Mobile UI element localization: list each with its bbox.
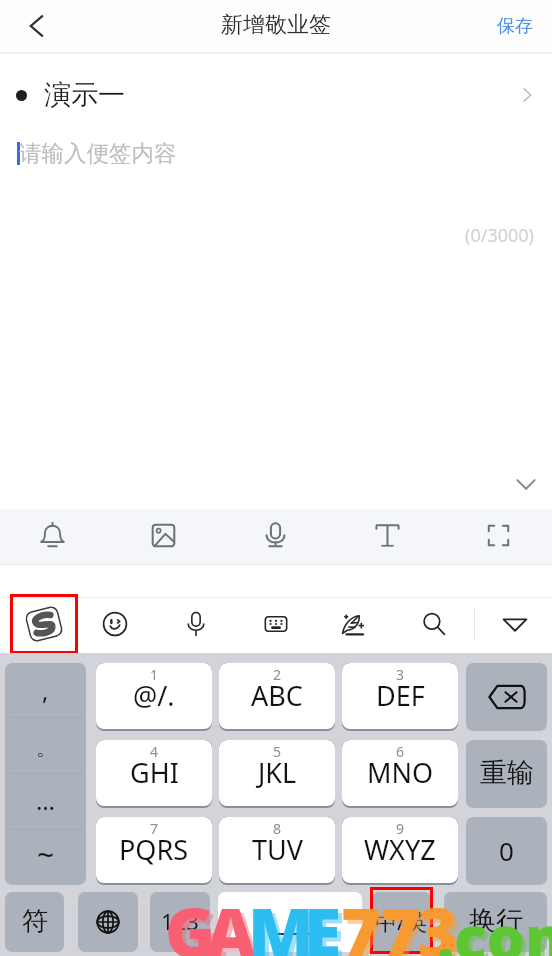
button[interactable]: Keyboard layout — [252, 600, 300, 648]
button[interactable]: 换行 — [444, 892, 547, 952]
staticText: 7 — [341, 884, 381, 956]
staticText: .com — [441, 900, 552, 956]
staticText: 保存 — [497, 15, 533, 38]
staticText: DEF — [376, 677, 425, 714]
button[interactable]: 。 — [5, 718, 86, 773]
button[interactable]: Search — [410, 600, 458, 648]
staticText: 4 — [150, 742, 159, 761]
staticText: 演示一 — [44, 78, 125, 112]
staticText: ~ — [37, 834, 55, 875]
button[interactable]: … — [5, 774, 86, 829]
button[interactable]: Backspace — [466, 663, 547, 731]
button[interactable]: Insert image — [137, 509, 189, 561]
staticText: 7 — [385, 888, 425, 956]
staticText: 123 — [161, 906, 199, 936]
staticText: 7 — [150, 819, 159, 838]
button[interactable]: , — [5, 663, 86, 717]
staticText: 6 — [396, 742, 405, 761]
staticText: 请输入便签内容 — [19, 139, 177, 167]
button[interactable]: Hide keyboard — [491, 600, 539, 648]
staticText: ABC — [251, 677, 303, 714]
button[interactable]: Back — [10, 0, 62, 52]
staticText: 新增敬业签 — [221, 11, 331, 39]
staticText: 3 — [418, 884, 458, 956]
button[interactable]: Voice input — [172, 600, 220, 648]
button[interactable]: 3 — [342, 663, 458, 731]
staticText: PQRS — [119, 831, 189, 868]
staticText: 重输 — [480, 756, 534, 790]
staticText: 。 — [36, 736, 56, 761]
button[interactable]: 4 — [96, 740, 212, 808]
staticText: 5 — [273, 742, 282, 761]
button[interactable]: 7 — [96, 817, 212, 885]
staticText: G — [165, 884, 216, 956]
staticText: .com — [437, 896, 552, 956]
staticText: MNO — [367, 754, 434, 791]
staticText: (0/3000) — [465, 223, 534, 248]
button[interactable]: Handwriting — [329, 600, 377, 648]
button[interactable]: 2 — [219, 663, 335, 731]
button[interactable]: 8 — [219, 817, 335, 885]
button[interactable]: 中/英 — [372, 892, 431, 952]
staticText: , — [42, 674, 49, 707]
button[interactable]: 9 — [342, 817, 458, 885]
button[interactable]: Sogou input method — [10, 594, 78, 654]
staticText: G — [169, 888, 220, 956]
staticText: 符 — [22, 905, 48, 938]
staticText: 9 — [396, 819, 405, 838]
staticText: @/. — [133, 677, 175, 714]
button[interactable]: 演示一 — [0, 64, 552, 126]
button[interactable]: 5 — [219, 740, 335, 808]
staticText: GHI — [130, 754, 179, 791]
button[interactable]: 1 — [96, 663, 212, 731]
staticText: TUV — [252, 831, 303, 868]
button[interactable]: Fullscreen — [472, 509, 524, 561]
staticText: M — [252, 888, 318, 956]
staticText: … — [36, 784, 55, 817]
staticText: 2 — [273, 665, 282, 684]
staticText: 3 — [422, 888, 462, 956]
staticText: WXYZ — [364, 831, 436, 868]
staticText: 7 — [345, 888, 385, 956]
button[interactable]: 6 — [342, 740, 458, 808]
button[interactable]: Voice note — [249, 509, 301, 561]
staticText: 0 — [499, 833, 514, 868]
staticText: A — [210, 888, 260, 956]
staticText: 8 — [273, 819, 282, 838]
button[interactable]: Reminder — [26, 509, 78, 561]
button[interactable]: 0 — [466, 817, 547, 885]
button[interactable]: 符 — [5, 892, 64, 952]
staticText: M — [248, 884, 314, 956]
staticText: A — [206, 884, 256, 956]
staticText: 中/英 — [375, 906, 428, 936]
staticText: E — [308, 888, 346, 956]
button[interactable]: 保存 — [497, 0, 533, 52]
staticText: E — [304, 884, 342, 956]
staticText: 换行 — [469, 904, 523, 938]
button[interactable]: ~ — [5, 830, 86, 885]
staticText: JKL — [258, 754, 297, 791]
staticText: 7 — [381, 884, 421, 956]
button[interactable]: 重输 — [466, 740, 547, 808]
button[interactable]: Emoji — [91, 600, 139, 648]
button[interactable]: Space — [218, 892, 362, 952]
button[interactable]: 123 — [150, 892, 210, 952]
button[interactable]: Switch language — [78, 892, 138, 952]
button[interactable]: Collapse keyboard — [505, 463, 547, 505]
button[interactable]: Text format — [361, 509, 413, 561]
staticText: 3 — [396, 665, 405, 684]
staticText: 1 — [150, 665, 159, 684]
